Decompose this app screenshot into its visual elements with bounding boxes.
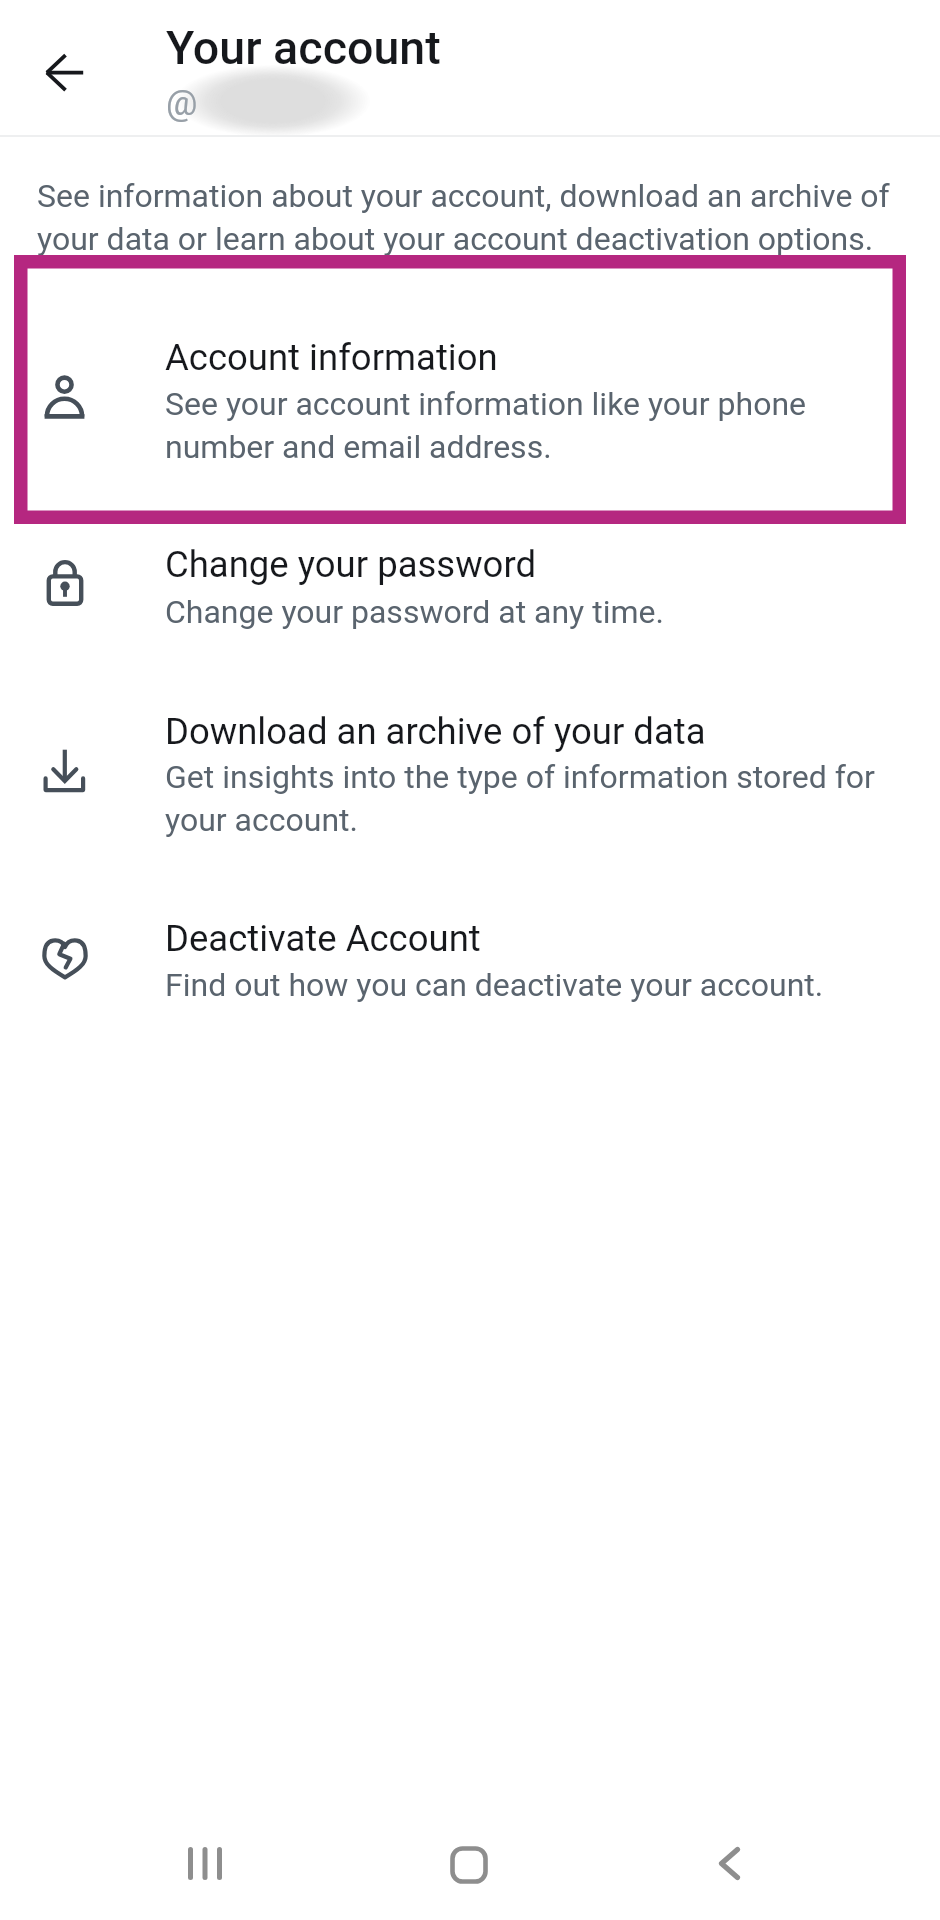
button[interactable]: Home (418, 1814, 518, 1914)
staticText: Your account (166, 21, 441, 75)
staticText: Find out how you can deactivate your acc… (165, 966, 824, 1004)
staticText: Account information (165, 336, 498, 379)
button[interactable]: Back (22, 38, 92, 108)
staticText: Deactivate Account (165, 917, 481, 960)
staticText: Download an archive of your data (165, 710, 706, 753)
button[interactable]: Recent apps (155, 1813, 255, 1913)
button[interactable]: Back (680, 1813, 780, 1913)
button[interactable]: Download an archive of your data (0, 671, 940, 878)
staticText: See information about your account, down… (37, 177, 890, 258)
staticText: Change your password at any time. (165, 593, 664, 631)
button[interactable]: Account information (0, 296, 940, 504)
staticText: See your account information like your p… (165, 385, 807, 466)
staticText: Change your password (165, 543, 537, 586)
staticText: @ (166, 83, 198, 124)
button[interactable]: Change your password (0, 504, 940, 671)
button[interactable]: Deactivate Account (0, 878, 940, 1045)
staticText: Get insights into the type of informatio… (165, 758, 875, 839)
